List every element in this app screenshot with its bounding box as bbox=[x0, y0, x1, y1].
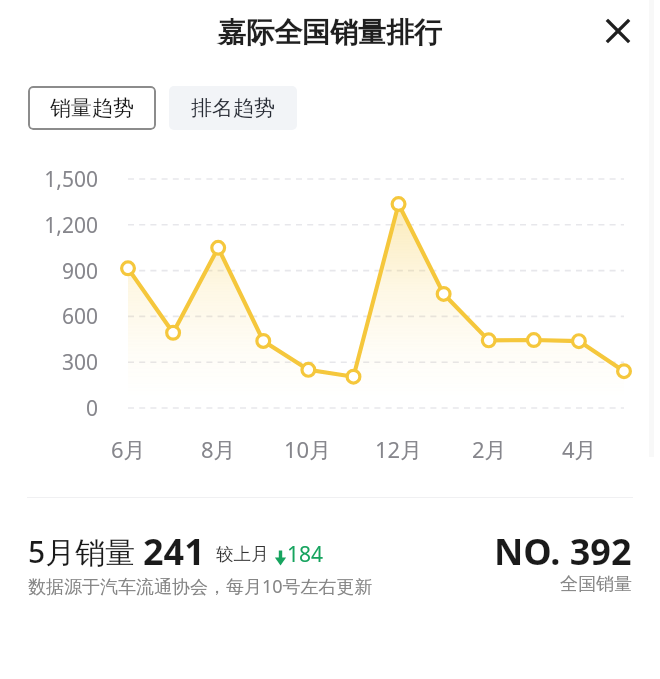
staticText: 1,500 bbox=[44, 165, 98, 194]
staticText: 1,200 bbox=[44, 211, 98, 240]
button[interactable]: 排名趋势 bbox=[169, 86, 297, 130]
staticText: 0 bbox=[85, 394, 98, 423]
staticText: 241 bbox=[143, 527, 205, 576]
staticText: 4月 bbox=[562, 434, 597, 464]
staticText: 8月 bbox=[201, 434, 236, 464]
staticText: 2月 bbox=[472, 434, 507, 464]
staticText: 300 bbox=[61, 348, 98, 377]
staticText: 5月销量 bbox=[28, 531, 136, 572]
staticText: 10月 bbox=[284, 434, 332, 464]
staticText: 全国销量 bbox=[560, 573, 632, 596]
staticText: 184 bbox=[287, 540, 324, 569]
button[interactable]: Close bbox=[598, 11, 638, 51]
button[interactable]: 销量趋势 bbox=[28, 86, 156, 130]
staticText: 12月 bbox=[375, 434, 423, 464]
staticText: 较上月 bbox=[216, 543, 269, 565]
staticText: 600 bbox=[61, 302, 98, 331]
staticText: 销量趋势 bbox=[50, 95, 134, 121]
staticText: 排名趋势 bbox=[191, 95, 275, 121]
staticText: 6月 bbox=[111, 434, 146, 464]
staticText: 900 bbox=[61, 257, 98, 286]
staticText: NO. 392 bbox=[494, 527, 632, 576]
staticText: 数据源于汽车流通协会，每月10号左右更新 bbox=[28, 574, 373, 599]
staticText: 嘉际全国销量排行 bbox=[0, 15, 660, 50]
